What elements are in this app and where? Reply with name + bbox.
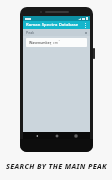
- button[interactable]: More options: [83, 21, 88, 29]
- button[interactable]: Back: [32, 132, 42, 139]
- staticText: Wavenumber,: [29, 40, 52, 45]
- button[interactable]: Home: [52, 132, 62, 139]
- button[interactable]: Peak: [23, 29, 90, 36]
- staticText: Raman Spectra Database: [26, 22, 79, 28]
- staticText: SEARCH BY THE MAIN PEAK: [6, 161, 107, 171]
- button[interactable]: Recent apps: [71, 132, 81, 139]
- staticText: -1: [58, 39, 60, 42]
- staticText: Peak: [26, 30, 35, 35]
- button[interactable]: Wavenumber,: [26, 38, 87, 47]
- staticText: cm: [53, 40, 58, 45]
